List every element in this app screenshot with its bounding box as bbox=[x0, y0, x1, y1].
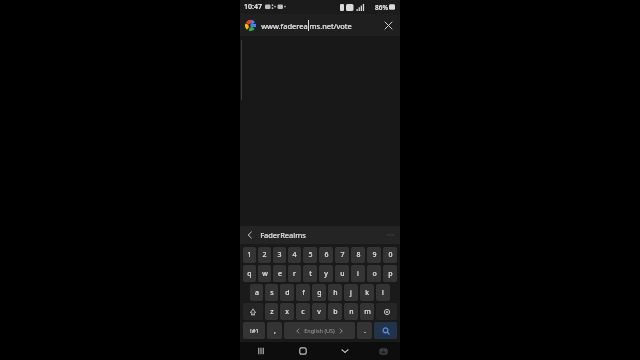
button[interactable]: s bbox=[265, 284, 278, 301]
staticText: d bbox=[285, 288, 290, 298]
button[interactable]: 3 bbox=[273, 247, 286, 263]
button[interactable]: Recent apps bbox=[251, 342, 271, 360]
button[interactable]: 2 bbox=[258, 247, 271, 263]
button[interactable]: k bbox=[360, 284, 374, 301]
button[interactable]: English (US) bbox=[284, 322, 355, 339]
button[interactable]: Hide keyboard bbox=[335, 342, 355, 360]
staticText: a bbox=[255, 288, 259, 298]
staticText: c bbox=[301, 307, 305, 317]
staticText: 10:47 bbox=[244, 2, 262, 12]
staticText: 6 bbox=[324, 250, 329, 260]
button[interactable]: x bbox=[280, 303, 294, 320]
button[interactable]: Previous suggestion bbox=[244, 229, 256, 241]
button[interactable]: q bbox=[243, 265, 256, 282]
staticText: 2 bbox=[262, 250, 267, 260]
staticText: . bbox=[364, 326, 366, 336]
button[interactable]: z bbox=[265, 303, 278, 320]
staticText: 4 bbox=[292, 250, 297, 260]
staticText: h bbox=[333, 288, 338, 298]
button[interactable]: 0 bbox=[383, 247, 397, 263]
button[interactable]: 6 bbox=[319, 247, 333, 263]
staticText: z bbox=[270, 307, 274, 317]
staticText: 9 bbox=[372, 250, 377, 260]
staticText: t bbox=[309, 269, 312, 279]
staticText: x bbox=[285, 307, 289, 317]
staticText: k bbox=[365, 288, 369, 298]
button[interactable]: e bbox=[273, 265, 286, 282]
button[interactable]: a bbox=[250, 284, 263, 301]
button[interactable]: b bbox=[328, 303, 342, 320]
button[interactable]: t bbox=[303, 265, 317, 282]
button[interactable]: . bbox=[357, 322, 372, 339]
button[interactable]: c bbox=[296, 303, 310, 320]
button[interactable]: r bbox=[288, 265, 301, 282]
button[interactable]: Clear bbox=[381, 18, 395, 32]
staticText: p bbox=[388, 269, 393, 279]
button[interactable]: y bbox=[319, 265, 333, 282]
button[interactable]: m bbox=[360, 303, 374, 320]
staticText: FaderRealms bbox=[260, 230, 306, 240]
staticText: 7 bbox=[340, 250, 345, 260]
staticText: y bbox=[324, 269, 328, 279]
button[interactable]: h bbox=[328, 284, 342, 301]
button[interactable]: v bbox=[312, 303, 326, 320]
staticText: 86% bbox=[375, 3, 388, 12]
staticText: b bbox=[333, 307, 338, 317]
button[interactable]: 1 bbox=[243, 247, 256, 263]
button[interactable]: Google search bbox=[240, 14, 400, 36]
button[interactable]: 7 bbox=[335, 247, 349, 263]
staticText: j bbox=[350, 288, 352, 298]
button[interactable]: !#1 bbox=[243, 322, 265, 339]
staticText: 1 bbox=[247, 250, 252, 260]
button[interactable]: u bbox=[335, 265, 349, 282]
staticText: q bbox=[247, 269, 252, 279]
button[interactable]: l bbox=[376, 284, 390, 301]
staticText: w bbox=[262, 269, 268, 279]
button[interactable]: Change keyboard bbox=[374, 342, 392, 360]
staticText: 8 bbox=[356, 250, 361, 260]
staticText: v bbox=[317, 307, 321, 317]
staticText: 0 bbox=[388, 250, 393, 260]
staticText: g bbox=[317, 288, 322, 298]
button[interactable]: o bbox=[367, 265, 381, 282]
button[interactable]: More suggestions bbox=[384, 229, 396, 241]
button[interactable]: 8 bbox=[351, 247, 365, 263]
staticText: s bbox=[270, 288, 274, 298]
button[interactable]: w bbox=[258, 265, 271, 282]
button[interactable]: d bbox=[280, 284, 294, 301]
button[interactable]: j bbox=[344, 284, 358, 301]
staticText: e bbox=[278, 269, 282, 279]
button[interactable]: f bbox=[296, 284, 310, 301]
button[interactable]: n bbox=[344, 303, 358, 320]
button[interactable]: 9 bbox=[367, 247, 381, 263]
staticText: m bbox=[364, 307, 371, 317]
button[interactable]: Search bbox=[374, 322, 397, 339]
other: Google search bbox=[245, 20, 256, 31]
button[interactable]: Backspace bbox=[376, 303, 397, 320]
button[interactable]: i bbox=[351, 265, 365, 282]
staticText: i bbox=[357, 269, 359, 279]
staticText: 5 bbox=[308, 250, 313, 260]
staticText: l bbox=[382, 288, 384, 298]
button[interactable]: Shift bbox=[243, 303, 263, 320]
button[interactable]: , bbox=[267, 322, 282, 339]
staticText: o bbox=[372, 269, 377, 279]
button[interactable]: 4 bbox=[288, 247, 301, 263]
staticText: English (US) bbox=[304, 327, 335, 334]
staticText: u bbox=[340, 269, 345, 279]
staticText: www.faderealms.net/vote bbox=[261, 21, 352, 31]
staticText: 3 bbox=[277, 250, 282, 260]
staticText: n bbox=[349, 307, 354, 317]
button[interactable]: 5 bbox=[303, 247, 317, 263]
staticText: f bbox=[302, 288, 305, 298]
button[interactable]: Home bbox=[293, 342, 313, 360]
staticText: r bbox=[293, 269, 296, 279]
button[interactable]: Previous suggestion bbox=[240, 226, 400, 244]
button[interactable]: g bbox=[312, 284, 326, 301]
button[interactable]: p bbox=[383, 265, 397, 282]
staticText: !#1 bbox=[250, 327, 259, 335]
staticText: , bbox=[274, 326, 276, 336]
